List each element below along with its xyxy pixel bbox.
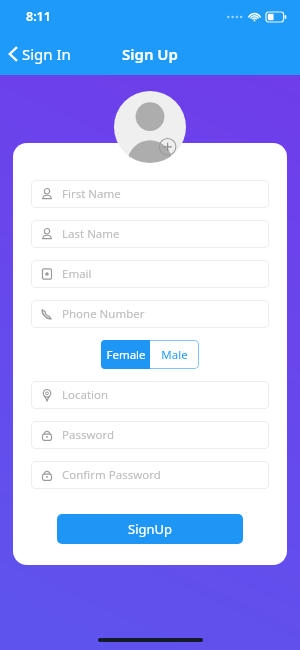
staticText: Male <box>161 347 188 363</box>
button[interactable]: Add profile photo <box>114 91 186 163</box>
staticText: Female <box>106 347 146 363</box>
staticText: Sign In <box>22 44 71 64</box>
staticText: Email <box>62 266 92 282</box>
button[interactable]: Female <box>101 340 150 369</box>
staticText: Last Name <box>62 226 120 242</box>
button[interactable]: Last Name <box>31 220 269 248</box>
button[interactable]: Male <box>150 340 199 369</box>
staticText: Sign Up <box>122 44 178 64</box>
staticText: SignUp <box>128 520 173 538</box>
staticText: 8:11 <box>26 8 51 25</box>
staticText: Confirm Password <box>62 467 161 483</box>
staticText: Location <box>62 387 109 403</box>
button[interactable]: First Name <box>31 180 269 208</box>
staticText: First Name <box>62 186 121 202</box>
button[interactable]: Confirm Password <box>31 461 269 489</box>
button[interactable]: Sign In <box>0 32 81 75</box>
staticText: Phone Number <box>62 306 145 322</box>
button[interactable]: SignUp <box>57 514 243 544</box>
button[interactable]: Phone Number <box>31 300 269 328</box>
button[interactable]: Location <box>31 381 269 409</box>
staticText: Password <box>62 427 115 443</box>
button[interactable]: Email <box>31 260 269 288</box>
button[interactable]: Password <box>31 421 269 449</box>
